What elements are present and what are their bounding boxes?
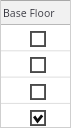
button[interactable]: Unchecked option (1, 78, 70, 104)
button[interactable]: Base Floor (1, 0, 70, 24)
staticText: Base Floor (3, 6, 55, 20)
button[interactable]: Checked option (1, 104, 70, 128)
button[interactable]: Unchecked option (1, 25, 70, 51)
button[interactable]: Unchecked option (1, 51, 70, 77)
